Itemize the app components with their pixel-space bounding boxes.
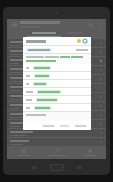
button[interactable] bbox=[23, 80, 91, 87]
button[interactable] bbox=[7, 129, 106, 137]
button[interactable] bbox=[58, 123, 71, 129]
button[interactable] bbox=[7, 102, 106, 110]
button[interactable] bbox=[27, 30, 61, 39]
button[interactable]: Search bbox=[87, 21, 95, 29]
button[interactable] bbox=[73, 123, 88, 129]
button[interactable] bbox=[7, 111, 106, 119]
button[interactable] bbox=[7, 66, 106, 74]
button[interactable] bbox=[7, 75, 106, 83]
button[interactable]: Settings bbox=[82, 38, 88, 44]
button[interactable] bbox=[7, 57, 106, 65]
button[interactable]: Tab 2 bbox=[40, 146, 73, 159]
button[interactable] bbox=[7, 48, 106, 56]
button[interactable] bbox=[61, 30, 87, 39]
button[interactable] bbox=[23, 72, 91, 79]
button[interactable] bbox=[7, 138, 106, 146]
button[interactable] bbox=[7, 120, 106, 128]
button[interactable]: Warning bbox=[76, 38, 82, 44]
button[interactable] bbox=[7, 93, 106, 101]
button[interactable]: Tab 1 bbox=[7, 146, 40, 159]
button[interactable] bbox=[7, 84, 106, 92]
button[interactable] bbox=[26, 48, 52, 52]
button[interactable]: Home bbox=[50, 164, 64, 171]
button[interactable] bbox=[41, 123, 56, 129]
button[interactable] bbox=[23, 104, 91, 111]
button[interactable] bbox=[7, 39, 106, 47]
button[interactable] bbox=[23, 88, 91, 95]
button[interactable]: Tab 3 bbox=[73, 146, 106, 159]
button[interactable] bbox=[23, 64, 91, 71]
button[interactable] bbox=[23, 96, 91, 103]
button[interactable]: Navigate up bbox=[10, 20, 19, 29]
